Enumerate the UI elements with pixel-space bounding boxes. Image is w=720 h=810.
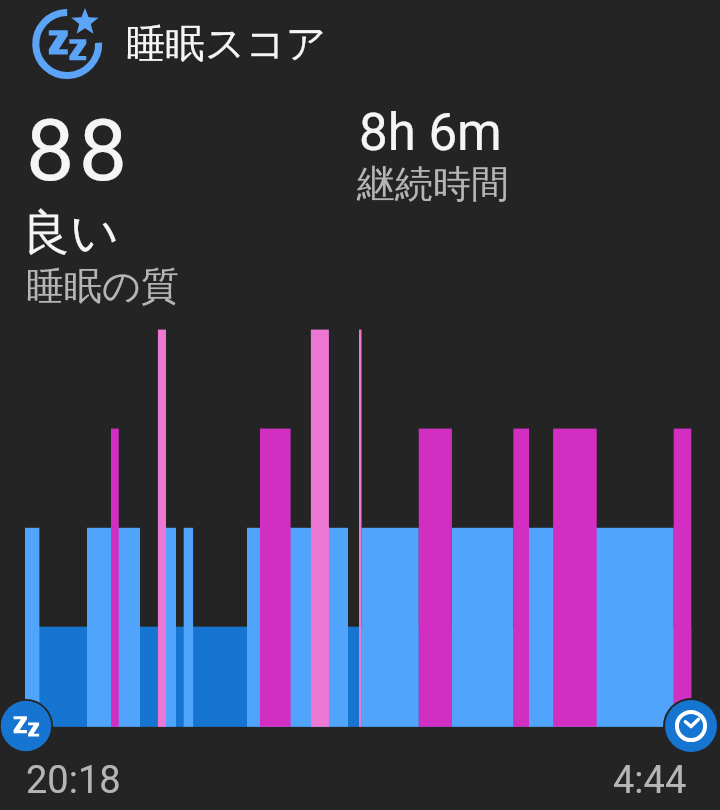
staticText: 継続時間 <box>357 160 509 208</box>
other: Sleep score <box>30 4 108 82</box>
staticText: 睡眠の質 <box>26 262 179 310</box>
staticText: 4:44 <box>613 758 687 803</box>
button[interactable]: Bedtime 20:18 <box>0 699 53 753</box>
staticText: 睡眠スコア <box>126 19 327 69</box>
button[interactable]: Sleep stages chart <box>25 325 692 727</box>
staticText: 20:18 <box>26 758 121 803</box>
staticText: 良い <box>22 203 120 263</box>
button[interactable]: Wake up time 4:44 <box>663 698 719 754</box>
staticText: 8h 6m <box>359 103 502 163</box>
staticText: 88 <box>26 100 132 201</box>
button[interactable]: Sleep score <box>0 0 340 86</box>
